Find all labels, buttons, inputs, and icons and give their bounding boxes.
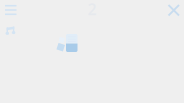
button[interactable]: Close [168,4,179,16]
button[interactable]: Music [5,25,15,35]
staticText: 2 [87,0,96,20]
button[interactable]: Menu [5,4,16,15]
